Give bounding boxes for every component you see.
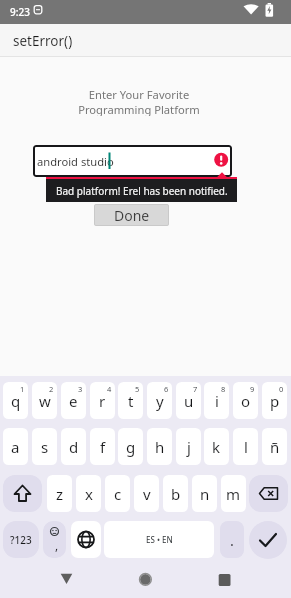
staticText: ?123 [10,533,32,547]
staticText: 9:23 [10,5,30,19]
button[interactable]: x [76,475,101,512]
button[interactable]: p [262,382,287,419]
staticText: 9 [250,384,255,394]
button[interactable]: v [134,475,159,512]
staticText: l [244,437,248,457]
button[interactable] [249,475,288,512]
staticText: b [171,484,181,504]
staticText: c [114,484,122,504]
staticText: q [11,391,21,411]
button[interactable]: ?123 [3,521,39,558]
button[interactable]: w [32,382,57,419]
staticText: n [200,484,210,504]
staticText: y [156,391,164,411]
button[interactable]: r [90,382,115,419]
staticText: Enter Your Favorite Programming Platform [78,87,200,116]
button[interactable]: g [118,428,143,465]
staticText: 7 [193,384,198,394]
button[interactable] [249,521,287,559]
button[interactable] [3,475,42,512]
button[interactable]: j [176,428,201,465]
button[interactable]: ñ [262,428,287,465]
staticText: x [85,484,93,504]
button[interactable]: k [204,428,229,465]
button[interactable]: q [3,382,28,419]
staticText: android studio [37,154,114,169]
staticText: u [184,391,194,411]
staticText: m [226,484,241,504]
button[interactable]: e [61,382,86,419]
button[interactable]: , [43,521,66,558]
button[interactable]: z [47,475,72,512]
button[interactable]: i [204,382,229,419]
staticText: ES • EN [146,534,173,545]
staticText: 6 [164,384,169,394]
staticText: a [11,437,20,457]
button[interactable]: y [147,382,172,419]
staticText: h [155,437,165,457]
staticText: f [100,437,106,457]
staticText: z [56,484,64,504]
button[interactable]: f [90,428,115,465]
button[interactable]: o [233,382,258,419]
button[interactable]: h [147,428,172,465]
button[interactable] [54,566,79,591]
staticText: 4 [107,384,112,394]
staticText: Done [114,206,150,225]
staticText: 2 [49,384,54,394]
button[interactable]: n [192,475,217,512]
staticText: t [128,391,134,411]
staticText: d [69,437,79,457]
button[interactable]: u [176,382,201,419]
staticText: ñ [270,437,280,457]
button[interactable]: android studio [33,145,232,177]
staticText: setError() [13,32,73,50]
staticText: . [230,530,234,550]
button[interactable]: . [220,521,244,558]
staticText: v [143,484,151,504]
button[interactable]: l [233,428,258,465]
staticText: p [270,391,280,411]
staticText: k [212,437,221,457]
button[interactable]: t [118,382,143,419]
staticText: 5 [135,384,140,394]
button[interactable] [133,567,158,592]
staticText: i [215,391,219,411]
button[interactable] [212,567,237,592]
staticText: , [55,537,59,553]
button[interactable]: d [61,428,86,465]
button[interactable]: Done [94,204,169,226]
staticText: w [39,391,51,411]
button[interactable]: m [221,475,246,512]
staticText: e [69,391,78,411]
staticText: o [241,391,251,411]
staticText: 1 [20,384,25,394]
button[interactable]: ES • EN [104,521,214,558]
staticText: 3 [78,384,83,394]
button[interactable]: s [32,428,57,465]
button[interactable]: c [105,475,130,512]
staticText: j [187,437,191,457]
button[interactable] [71,521,101,558]
staticText: 0 [279,384,284,394]
button[interactable]: a [3,428,28,465]
staticText: g [126,437,136,457]
staticText: 8 [221,384,226,394]
staticText: Bad platform! Erel has been notified. [56,184,228,198]
staticText: s [41,437,49,457]
button[interactable]: b [163,475,188,512]
staticText: r [99,391,106,411]
